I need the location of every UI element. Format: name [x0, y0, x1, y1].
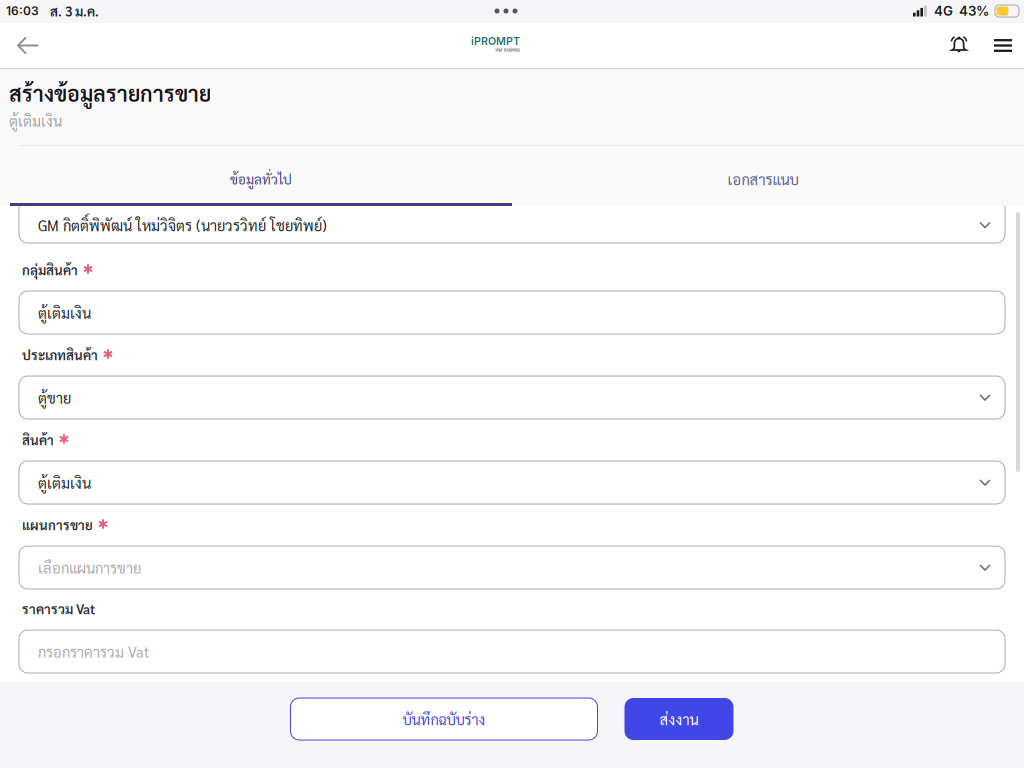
button[interactable]: บันทึกฉบับร่าง [290, 698, 597, 740]
staticText: ประเภทสินค้า [22, 346, 98, 363]
button[interactable]: ส่งงาน [624, 698, 733, 740]
button[interactable]: GM กิตติ์พิพัฒน์ ใหม่วิจิตร (นายวรวิทย์ … [19, 199, 1005, 243]
staticText: เอกสารแนบ [727, 169, 798, 189]
staticText: Your Business [495, 47, 520, 52]
staticText: บันทึกฉบับร่าง [402, 709, 485, 729]
staticText: ตู้ขาย [38, 388, 71, 407]
staticText: เลือกแผนการขาย [38, 558, 141, 577]
staticText: ตู้เติมเงิน [9, 111, 62, 130]
button[interactable]: Notifications [938, 25, 981, 66]
staticText: สินค้า [22, 431, 54, 448]
staticText: สร้างข้อมูลรายการขาย [9, 79, 211, 107]
staticText: 4G [934, 3, 953, 19]
staticText: ตู้เติมเงิน [38, 303, 91, 322]
staticText: 16:03 [6, 4, 39, 18]
button[interactable]: Menu [981, 23, 1024, 68]
button[interactable]: กรอกราคารวม Vat [19, 630, 1005, 673]
button[interactable]: ตู้ขาย [19, 376, 1005, 419]
button[interactable]: ตู้เติมเงิน [19, 461, 1005, 504]
staticText: กรอกราคารวม Vat [38, 642, 150, 661]
staticText: GM กิตติ์พิพัฒน์ ใหม่วิจิตร (นายวรวิทย์ … [38, 215, 327, 235]
button[interactable]: เลือกแผนการขาย [19, 546, 1005, 589]
button[interactable]: ข้อมูลทั่วไป [10, 146, 512, 206]
button[interactable]: เอกสารแนบ [512, 146, 1014, 206]
staticText: ส่งงาน [659, 709, 698, 729]
staticText: 43% [959, 3, 989, 19]
staticText: กลุ่มสินค้า [22, 261, 78, 278]
staticText: ส. 3 ม.ค. [50, 2, 99, 20]
staticText: ข้อมูลทั่วไป [230, 170, 292, 188]
staticText: iPROMPT [471, 35, 520, 47]
staticText: ตู้เติมเงิน [38, 473, 91, 492]
button[interactable]: Back [9, 23, 53, 67]
button[interactable]: ตู้เติมเงิน [19, 291, 1005, 334]
staticText: แผนการขาย [22, 516, 93, 533]
staticText: ราคารวม Vat [22, 600, 95, 617]
